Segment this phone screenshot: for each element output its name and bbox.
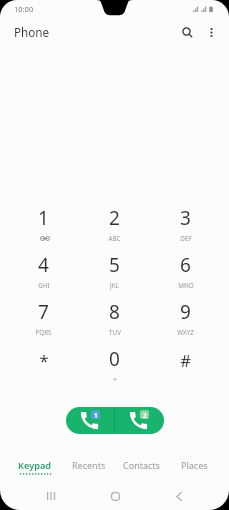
button[interactable]: 1 — [8, 193, 79, 240]
staticText: # — [180, 349, 191, 371]
staticText: JKL — [110, 281, 119, 290]
staticText: 8 — [109, 299, 120, 325]
button[interactable]: Recents — [62, 456, 115, 480]
button[interactable]: 7 — [8, 287, 79, 334]
staticText: 1 — [38, 205, 49, 231]
button[interactable]: Back — [164, 482, 194, 510]
button[interactable]: More options — [198, 19, 224, 45]
staticText: + — [113, 375, 117, 384]
staticText: 3 — [180, 205, 191, 231]
staticText: TUV — [109, 328, 121, 337]
button[interactable]: 6 — [150, 240, 221, 287]
staticText: 2 — [143, 411, 147, 419]
staticText: * — [39, 349, 49, 371]
button[interactable]: Places — [168, 456, 221, 480]
staticText: Keypad — [18, 459, 52, 472]
staticText: 1 — [94, 411, 98, 419]
button[interactable]: 4 — [8, 240, 79, 287]
staticText: MNO — [178, 281, 194, 290]
staticText: 5 — [109, 252, 120, 278]
button[interactable]: 2 — [79, 193, 150, 240]
button[interactable]: Home — [100, 482, 130, 510]
staticText: PQRS — [35, 328, 52, 337]
button[interactable]: Call with SIM 1 — [66, 407, 114, 434]
staticText: 10:00 — [14, 4, 34, 14]
button[interactable]: Contacts — [115, 456, 168, 480]
staticText: 9 — [180, 299, 191, 325]
staticText: 6 — [180, 252, 191, 278]
staticText: 0 — [109, 346, 120, 372]
staticText: Contacts — [123, 459, 160, 471]
staticText: 2 — [109, 205, 120, 231]
staticText: WXYZ — [177, 328, 194, 337]
staticText: GHI — [38, 281, 50, 290]
button[interactable]: Recent apps — [36, 482, 66, 510]
button[interactable]: # — [150, 334, 221, 381]
staticText: DEF — [180, 234, 192, 243]
staticText: Recents — [72, 459, 106, 471]
button[interactable]: 0 — [79, 334, 150, 381]
staticText: ABC — [108, 234, 121, 243]
button[interactable]: 5 — [79, 240, 150, 287]
button[interactable]: Keypad — [8, 456, 62, 480]
staticText: Phone — [14, 24, 50, 40]
staticText: 7 — [38, 299, 49, 325]
button[interactable]: Search — [174, 19, 200, 45]
button[interactable]: 9 — [150, 287, 221, 334]
staticText: 4 — [38, 252, 49, 278]
button[interactable]: 8 — [79, 287, 150, 334]
button[interactable]: Call with SIM 2 — [115, 407, 164, 434]
button[interactable]: 3 — [150, 193, 221, 240]
staticText: Places — [181, 459, 208, 471]
button[interactable]: * — [8, 334, 79, 381]
